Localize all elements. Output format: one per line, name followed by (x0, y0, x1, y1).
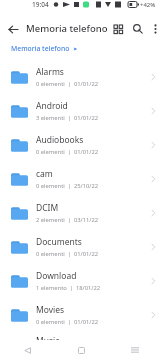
button[interactable]: Alarms (0, 60, 162, 94)
staticText: 0 elementi | 01/01/22 (36, 80, 99, 88)
button[interactable]: cam (0, 162, 162, 196)
button[interactable]: Recents (108, 340, 162, 360)
button[interactable]: Download (0, 264, 162, 298)
staticText: 0 elementi | 01/01/22 (36, 148, 99, 156)
staticText: Download (36, 270, 77, 282)
staticText: Audiobooks (36, 134, 84, 146)
staticText: Documents (36, 236, 82, 248)
staticText: 0 elementi | 01/01/22 (36, 349, 99, 357)
staticText: Music (36, 335, 60, 347)
button[interactable]: Home (54, 340, 108, 360)
staticText: DCIM (36, 202, 59, 214)
button[interactable]: Back (0, 340, 54, 360)
staticText: +42% (140, 1, 156, 9)
button[interactable]: Movies (0, 298, 162, 332)
button[interactable]: Search (128, 19, 148, 39)
button[interactable]: More options (148, 18, 162, 40)
staticText: 1 elemento | 18/01/22 (36, 284, 101, 292)
button[interactable]: Audiobooks (0, 128, 162, 162)
staticText: 3 elementi | 01/01/22 (36, 114, 99, 122)
button[interactable]: DCIM (0, 196, 162, 230)
button[interactable]: Documents (0, 230, 162, 264)
button[interactable]: Memoria telefono (11, 44, 77, 53)
staticText: cam (36, 168, 53, 180)
button[interactable]: Music (0, 332, 162, 360)
button[interactable]: Grid view (108, 19, 128, 39)
staticText: 0 elementi | 01/01/22 (36, 250, 99, 258)
staticText: Memoria telefono (11, 44, 70, 53)
button[interactable]: Back (0, 16, 26, 42)
staticText: Memoria telefono (26, 22, 108, 35)
staticText: Android (36, 100, 68, 112)
staticText: 0 elementi | 01/01/22 (36, 318, 99, 326)
staticText: 19:04 (32, 0, 49, 9)
staticText: 2 elementi | 03/11/22 (36, 216, 99, 224)
staticText: 0 elementi | 25/10/22 (36, 182, 99, 190)
button[interactable]: Android (0, 94, 162, 128)
staticText: Alarms (36, 66, 64, 78)
staticText: Movies (36, 304, 65, 316)
